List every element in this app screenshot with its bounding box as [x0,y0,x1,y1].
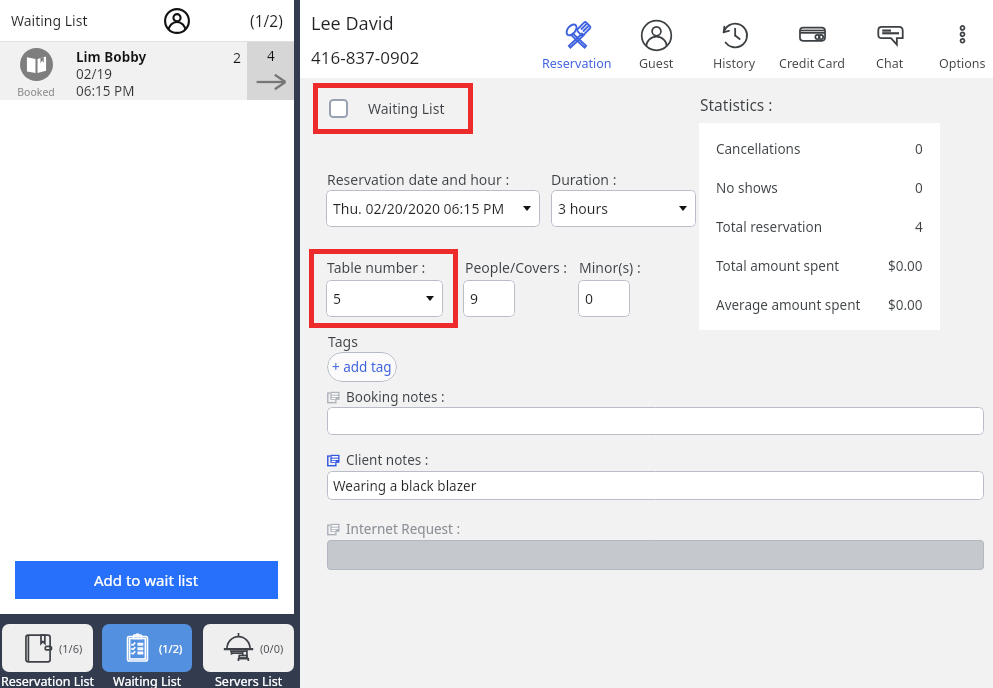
staticText: Statistics : [700,94,773,115]
staticText: Reservation List [1,673,94,688]
staticText: 0 [915,179,923,197]
staticText: Chat [876,55,904,72]
staticText: History [713,55,756,72]
staticText: 2 [233,48,242,67]
staticText: 4 [267,47,275,65]
button[interactable]: + add tag [327,352,397,382]
button[interactable]: Guest [606,19,706,77]
button[interactable]: Wearing a black blazer [327,471,984,500]
staticText: 0 [915,140,923,158]
button[interactable]: Chat [840,19,940,77]
staticText: (1/6) [59,641,83,656]
staticText: Client notes : [346,451,429,469]
staticText: Table number : [327,258,426,277]
staticText: Servers List [215,673,283,688]
button[interactable]: 3 hours [551,190,696,227]
staticText: 0 [585,289,594,308]
staticText: Average amount spent [716,296,861,314]
button[interactable]: Waiting List [329,83,473,134]
staticText: 06:15 PM [76,82,135,100]
staticText: People/Covers : [465,258,568,277]
staticText: 4 [915,218,923,236]
staticText: Internet Request : [346,520,461,538]
button[interactable]: Thu. 02/20/2020 06:15 PM [326,190,540,227]
staticText: Waiting List [368,99,445,118]
staticText: Duration : [551,170,617,189]
staticText: Credit Card [779,55,846,72]
staticText: 416-837-0902 [311,46,420,69]
staticText: Lee David [311,11,394,36]
staticText: Guest [639,55,674,72]
button[interactable]: 9 [463,280,515,317]
button[interactable]: (1/2) [87,614,207,688]
button[interactable] [327,407,984,435]
staticText: Options [939,55,986,72]
staticText: Lim Bobby [76,48,147,66]
button[interactable]: (0/0) [188,614,309,688]
button[interactable]: Credit Card [762,19,862,77]
staticText: 3 hours [558,199,608,218]
button[interactable]: Account [163,7,191,35]
staticText: (1/2) [250,10,283,31]
staticText: + add tag [332,358,392,376]
button[interactable]: Reservation [527,19,627,77]
button[interactable] [0,42,294,100]
staticText: Reservation date and hour : [327,170,510,189]
staticText: Cancellations [716,140,801,158]
staticText: Thu. 02/20/2020 06:15 PM [333,199,505,218]
staticText: (1/2) [159,641,183,656]
button[interactable]: (1/6) [0,614,108,688]
button[interactable]: Add to wait list [15,561,278,599]
staticText: Waiting List [113,673,182,688]
staticText: 5 [333,289,342,308]
button[interactable]: History [684,19,784,77]
staticText: Add to wait list [94,570,199,590]
staticText: (0/0) [260,641,284,656]
staticText: $0.00 [888,257,923,275]
staticText: Wearing a black blazer [333,477,477,495]
button[interactable]: 0 [578,280,630,317]
staticText: $0.00 [888,296,923,314]
button[interactable]: Options [912,19,993,77]
staticText: Minor(s) : [579,258,641,277]
staticText: No shows [716,179,778,197]
staticText: Booked [16,85,56,99]
staticText: Total reservation [716,218,823,236]
staticText: Total amount spent [716,257,840,275]
staticText: Tags [328,332,358,351]
button[interactable]: Open reservation [247,42,294,100]
staticText: 02/19 [76,65,112,83]
staticText: Reservation [542,55,612,72]
staticText: Waiting List [11,11,88,30]
staticText: Booking notes : [346,388,445,406]
staticText: 9 [470,289,479,308]
button[interactable]: 5 [326,280,443,317]
